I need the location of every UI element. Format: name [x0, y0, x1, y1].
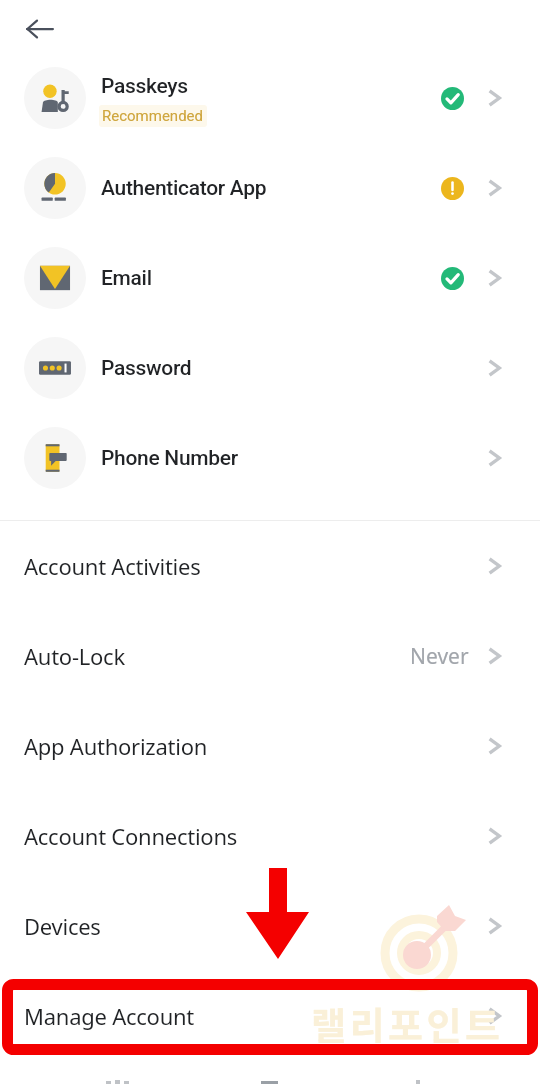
- staticText: Never: [410, 642, 469, 671]
- button[interactable]: App Authorization: [0, 701, 540, 791]
- staticText: Account Activities: [24, 551, 483, 581]
- button[interactable]: Passkeys: [0, 53, 540, 143]
- staticText: Authenticator App: [101, 176, 267, 201]
- button[interactable]: Email: [0, 233, 540, 323]
- staticText: App Authorization: [24, 731, 483, 761]
- staticText: Passkeys: [101, 74, 188, 99]
- button[interactable]: Manage Account: [0, 971, 540, 1061]
- button[interactable]: Password: [0, 323, 540, 413]
- button[interactable]: Account Connections: [0, 791, 540, 881]
- staticText: Auto-Lock: [24, 641, 410, 671]
- button[interactable]: Authenticator App: [0, 143, 540, 233]
- button[interactable]: Devices: [0, 881, 540, 971]
- staticText: Phone Number: [101, 446, 238, 471]
- staticText: Email: [101, 266, 152, 291]
- button[interactable]: Account Activities: [0, 521, 540, 611]
- staticText: 랠리포인트: [311, 996, 504, 1051]
- staticText: Password: [101, 356, 192, 381]
- button[interactable]: Back: [18, 7, 62, 51]
- staticText: Account Connections: [24, 821, 483, 851]
- staticText: Manage Account: [24, 1001, 483, 1031]
- button[interactable]: Phone Number: [0, 413, 540, 503]
- staticText: Recommended: [102, 107, 204, 125]
- button[interactable]: Auto-Lock: [0, 611, 540, 701]
- staticText: Devices: [24, 911, 483, 941]
